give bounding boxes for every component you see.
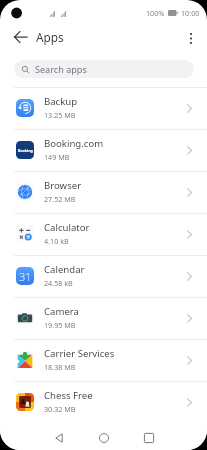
button[interactable]: Browser: [0, 171, 207, 213]
staticText: Chess Free: [44, 389, 93, 402]
staticText: 30.32 MB: [44, 404, 76, 414]
staticText: 19.95 MB: [44, 320, 76, 330]
staticText: Booking: [18, 148, 33, 153]
button[interactable]: Search apps: [14, 60, 194, 78]
staticText: Browser: [44, 179, 82, 192]
staticText: Apps: [36, 29, 64, 45]
button[interactable]: Back: [46, 425, 72, 450]
staticText: Calendar: [44, 263, 85, 276]
staticText: Backup: [44, 95, 78, 108]
staticText: 18.38 MB: [44, 362, 76, 372]
staticText: 31: [19, 269, 32, 284]
button[interactable]: Backup: [0, 87, 207, 129]
staticText: Carrier Services: [44, 347, 115, 360]
button[interactable]: Chess Free: [0, 381, 207, 423]
button[interactable]: 31: [0, 255, 207, 297]
button[interactable]: Carrier Services: [0, 339, 207, 381]
staticText: 27.52 MB: [44, 194, 76, 204]
staticText: Booking.com: [44, 137, 104, 150]
staticText: 100%: [146, 8, 165, 18]
staticText: 24.58 kB: [44, 278, 73, 288]
button[interactable]: Recent apps: [136, 425, 162, 450]
button[interactable]: Booking: [0, 129, 207, 171]
button[interactable]: Calculator: [0, 213, 207, 255]
button[interactable]: Back: [6, 23, 34, 51]
staticText: 13.25 MB: [44, 110, 76, 120]
staticText: Search apps: [35, 63, 87, 75]
button[interactable]: Home: [91, 425, 117, 450]
button[interactable]: More options: [179, 26, 203, 50]
staticText: 149 MB: [44, 152, 70, 162]
staticText: 4.10 kB: [44, 236, 69, 246]
button[interactable]: Camera: [0, 297, 207, 339]
staticText: 10:00: [181, 8, 200, 18]
staticText: Camera: [44, 305, 79, 318]
staticText: Calculator: [44, 221, 90, 234]
